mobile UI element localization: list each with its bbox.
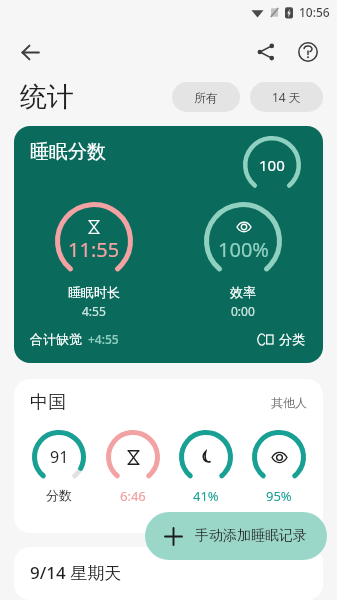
staticText: 14 天 bbox=[272, 89, 301, 105]
staticText: 中国 bbox=[30, 391, 66, 414]
staticText: 10:56 bbox=[299, 4, 330, 20]
staticText: 其他人 bbox=[271, 395, 307, 410]
staticText: 效率 bbox=[230, 284, 256, 300]
button[interactable]: 中国 bbox=[14, 379, 323, 533]
staticText: 0:00 bbox=[231, 303, 255, 319]
staticText: 91 bbox=[50, 446, 69, 468]
staticText: 睡眠分数 bbox=[30, 140, 106, 164]
staticText: 41% bbox=[193, 487, 219, 505]
button[interactable]: Help bbox=[287, 31, 329, 73]
staticText: 11:55 bbox=[68, 236, 120, 263]
staticText: 所有 bbox=[194, 90, 218, 105]
button[interactable]: 睡眠分数 bbox=[14, 126, 323, 363]
staticText: 4:55 bbox=[82, 303, 106, 319]
button[interactable]: 9/14 星期天 bbox=[14, 547, 323, 600]
staticText: 睡眠时长 bbox=[68, 284, 120, 300]
button[interactable]: Back bbox=[8, 30, 52, 74]
button[interactable]: 14 天 bbox=[250, 82, 323, 112]
staticText: 100% bbox=[218, 236, 269, 263]
button[interactable]: Share bbox=[245, 31, 287, 73]
button[interactable]: 分类 bbox=[256, 329, 307, 349]
staticText: 100 bbox=[259, 155, 285, 175]
staticText: 合计缺觉 bbox=[30, 331, 82, 347]
staticText: 9/14 星期天 bbox=[30, 561, 122, 584]
staticText: 分类 bbox=[279, 331, 305, 347]
staticText: 统计 bbox=[20, 80, 74, 114]
staticText: 6:46 bbox=[120, 487, 146, 505]
staticText: 手动添加睡眠记录 bbox=[195, 527, 307, 545]
staticText: 95% bbox=[266, 487, 292, 505]
staticText: +4:55 bbox=[88, 331, 119, 347]
button[interactable]: 手动添加睡眠记录 bbox=[145, 512, 327, 560]
button[interactable]: 所有 bbox=[172, 82, 240, 112]
staticText: 分数 bbox=[46, 487, 72, 503]
